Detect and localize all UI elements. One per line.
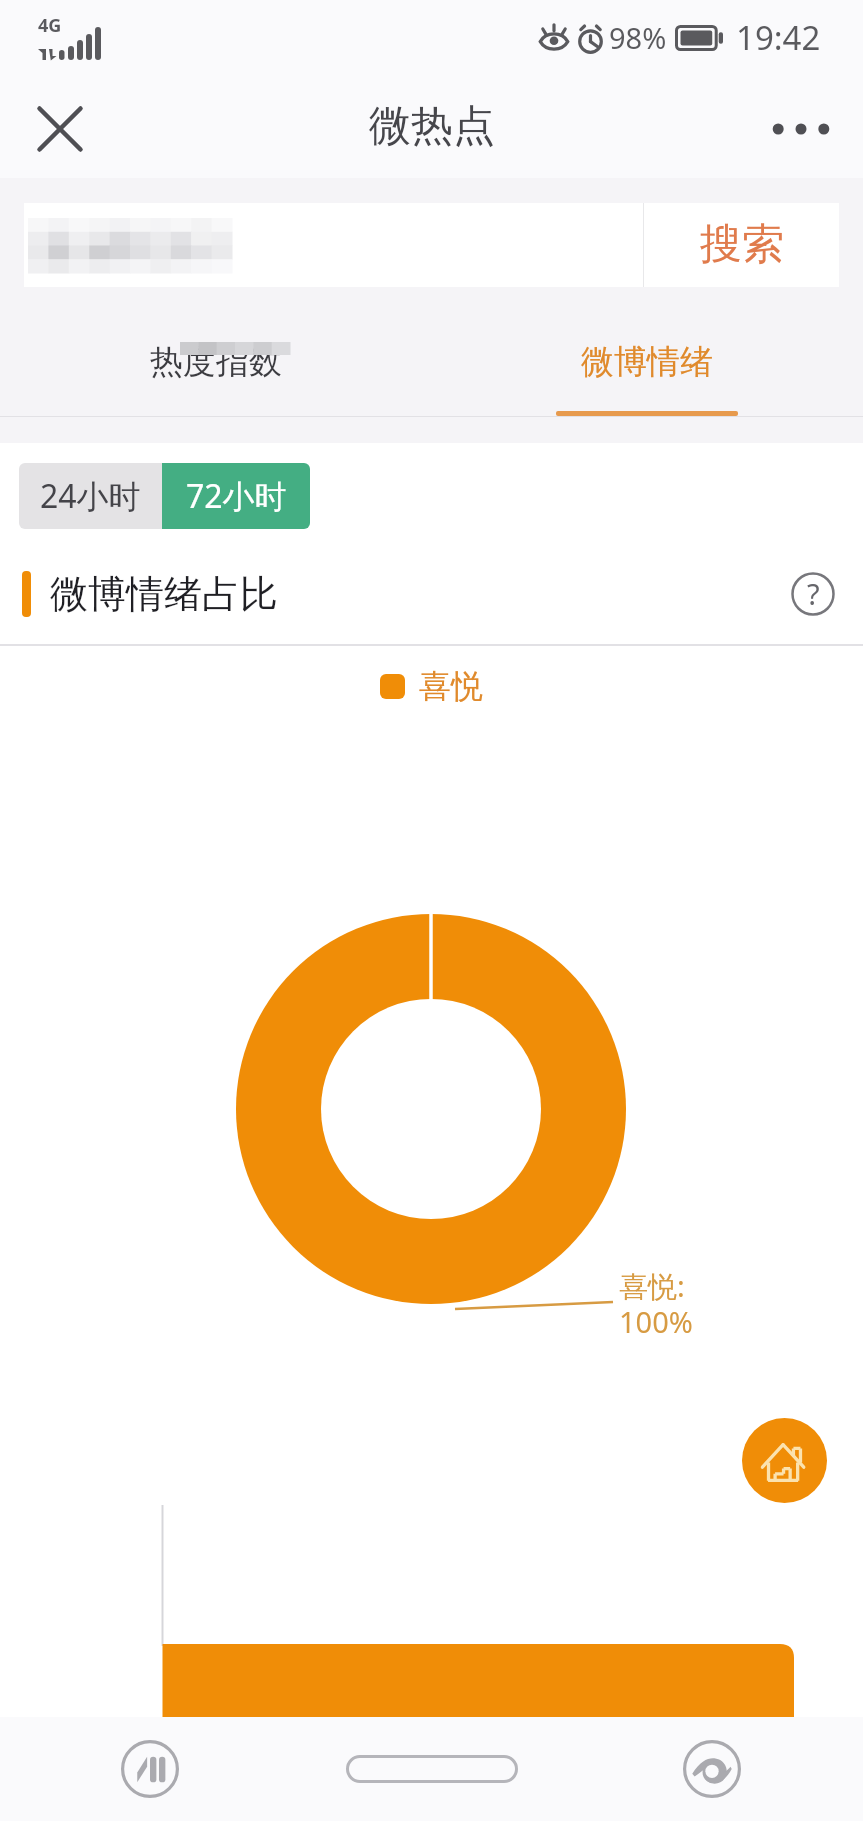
staticText: 24小时 — [40, 474, 141, 518]
button[interactable]: Close — [22, 91, 98, 167]
staticText: 72小时 — [186, 474, 287, 518]
button[interactable]: Assistant — [683, 1740, 741, 1798]
staticText: 热度指数 — [150, 341, 282, 383]
button[interactable]: Home — [742, 1418, 827, 1503]
button[interactable]: More options — [763, 91, 839, 167]
staticText: 搜索 — [700, 218, 784, 271]
button[interactable]: 72小时 — [162, 463, 310, 529]
button[interactable]: 微博情绪 — [431, 311, 863, 417]
staticText: 4G — [38, 13, 62, 38]
staticText: 微博情绪 — [581, 341, 713, 383]
button[interactable]: Recent apps — [121, 1740, 179, 1798]
button[interactable]: 24小时 — [19, 463, 162, 529]
staticText: 喜悦: — [619, 1266, 685, 1306]
staticText: ? — [807, 574, 820, 613]
button[interactable]: 热度指数 — [0, 311, 431, 417]
staticText: 微热点 — [369, 100, 495, 153]
staticText: 微博情绪占比 — [50, 570, 278, 618]
button[interactable]: Help — [791, 572, 835, 616]
staticText: 100% — [619, 1302, 693, 1341]
staticText: 19:42 — [736, 15, 821, 60]
button[interactable]: 搜索 — [644, 203, 839, 287]
button[interactable]: Home — [346, 1755, 518, 1783]
staticText: 98% — [609, 18, 667, 57]
staticText: 喜悦 — [419, 666, 483, 706]
